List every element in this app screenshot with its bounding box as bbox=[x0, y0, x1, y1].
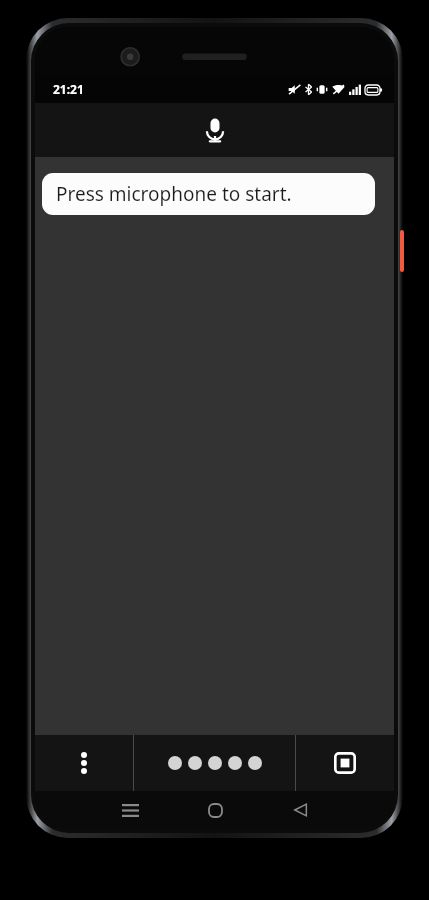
other: Power bbox=[400, 230, 404, 272]
button[interactable]: Microphone bbox=[35, 103, 394, 157]
button[interactable]: Stop bbox=[296, 735, 394, 791]
button[interactable]: Recent apps bbox=[87, 791, 173, 829]
button[interactable]: Press microphone to start. bbox=[42, 173, 375, 215]
button[interactable]: Home bbox=[173, 791, 258, 829]
staticText: 21:21 bbox=[53, 81, 84, 97]
staticText: Press microphone to start. bbox=[56, 181, 292, 207]
button[interactable]: Volume level bbox=[134, 735, 295, 791]
button[interactable]: More options bbox=[35, 735, 133, 791]
button[interactable]: Back bbox=[258, 791, 343, 829]
